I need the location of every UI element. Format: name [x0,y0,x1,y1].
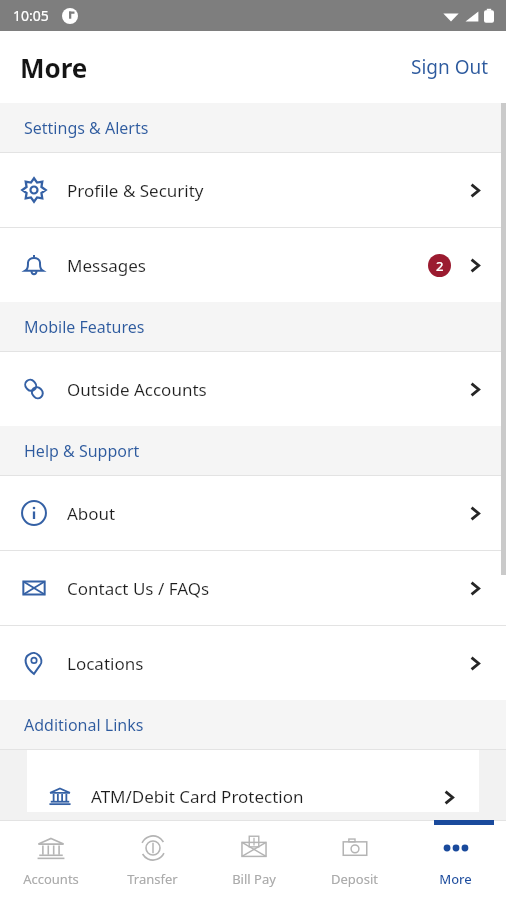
button[interactable]: Outside Accounts [0,352,506,426]
staticText: Transfer [127,870,178,888]
button[interactable]: Contact Us / FAQs [0,551,506,625]
staticText: Bill Pay [232,870,276,888]
button[interactable]: About [0,476,506,550]
staticText: Settings & Alerts [24,117,149,139]
staticText: Mobile Features [24,316,145,338]
staticText: Additional Links [24,714,144,736]
button[interactable]: ATM/Debit Card Protection [27,750,479,812]
button[interactable]: Messages [0,228,506,302]
button[interactable]: Deposit [304,821,405,900]
staticText: Sign Out [411,54,489,80]
staticText: Profile & Security [67,179,204,202]
button[interactable]: Accounts [0,821,102,900]
staticText: Contact Us / FAQs [67,577,210,600]
button[interactable]: Sign Out [394,42,506,92]
staticText: 2 [436,257,444,275]
staticText: Help & Support [24,440,140,462]
staticText: About [67,502,116,525]
staticText: 10:05 [13,6,49,25]
staticText: More [20,50,88,85]
button[interactable]: Locations [0,626,506,700]
staticText: Outside Accounts [67,378,207,401]
staticText: Locations [67,652,144,675]
button[interactable]: Bill Pay [203,821,304,900]
staticText: ATM/Debit Card Protection [91,785,304,808]
staticText: Accounts [23,870,79,888]
button[interactable]: More [405,821,506,900]
staticText: Messages [67,254,147,277]
button[interactable]: Transfer [102,821,203,900]
staticText: Deposit [331,870,378,888]
staticText: More [439,870,472,888]
button[interactable]: Profile & Security [0,153,506,227]
